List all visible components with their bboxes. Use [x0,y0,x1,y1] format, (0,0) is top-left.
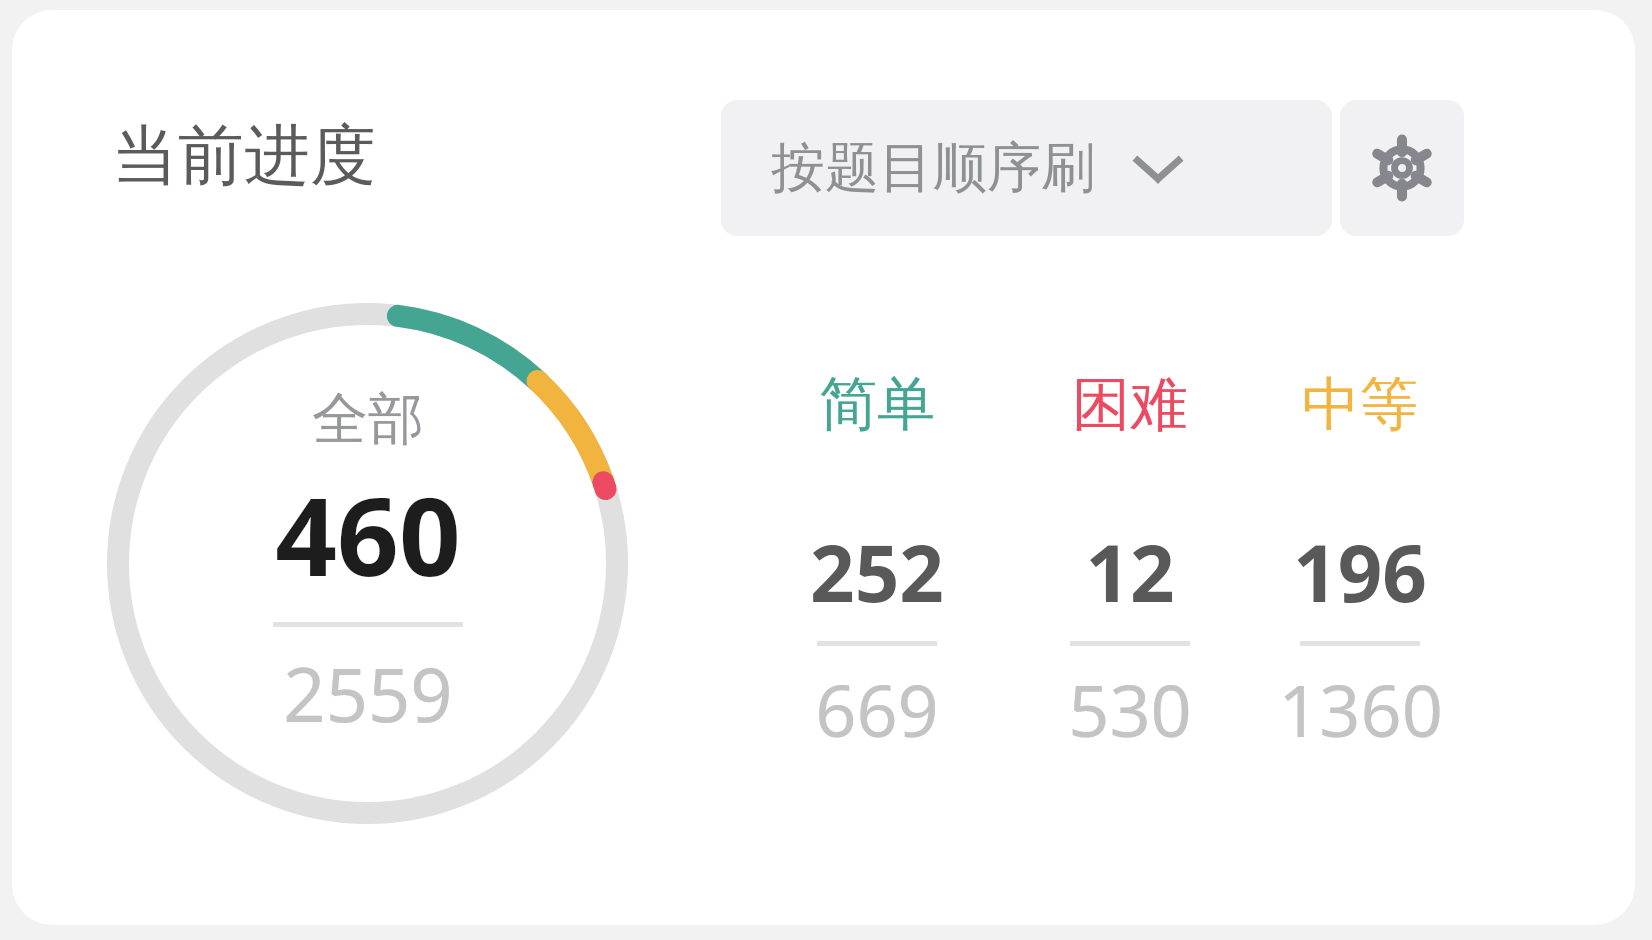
staticText: 12 [1085,519,1175,625]
staticText: 669 [815,660,939,758]
staticText: 1360 [1278,660,1443,758]
staticText: 当前进度 [112,114,376,197]
staticText: 简单 [819,368,935,441]
button[interactable]: 简单 [757,368,997,758]
staticText: 2559 [283,643,453,744]
staticText: 按题目顺序刷 [771,134,1095,202]
staticText: 530 [1068,660,1192,758]
staticText: 全部 [312,384,424,455]
staticText: 252 [810,519,944,625]
button[interactable]: 按题目顺序刷 [721,100,1332,236]
button[interactable]: 困难 [1010,368,1250,758]
staticText: 困难 [1072,368,1188,441]
staticText: 196 [1293,519,1427,625]
staticText: 460 [275,461,461,608]
staticText: 中等 [1302,368,1418,441]
button[interactable]: Settings [1340,100,1464,236]
button[interactable]: 中等 [1240,368,1480,758]
